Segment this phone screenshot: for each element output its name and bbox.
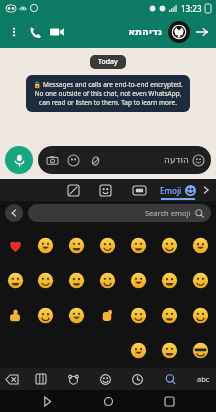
button[interactable]: Emoji 9 [61, 263, 92, 298]
staticText: Emoji [160, 185, 182, 196]
button[interactable]: Contact profile photo [168, 21, 190, 43]
button[interactable]: Emoji 4 [123, 227, 154, 263]
button[interactable]: Emoji 5 [154, 227, 185, 263]
button[interactable]: Search emoji [28, 204, 211, 222]
button[interactable]: Emoji 0 [0, 227, 30, 263]
button[interactable]: Video call [46, 21, 68, 43]
button[interactable]: Emoji [160, 179, 196, 201]
button[interactable]: Recent [125, 368, 149, 390]
button[interactable]: Emoji 10 [92, 263, 123, 298]
staticText: Search emoji [145, 208, 191, 218]
button[interactable]: Emoji 6 [185, 227, 216, 263]
button[interactable]: Emoji 11 [123, 263, 154, 298]
button[interactable]: Voice call [24, 21, 46, 43]
button[interactable]: GIF [128, 179, 150, 201]
button[interactable]: Emoji 17 [92, 298, 123, 333]
button[interactable]: Emoji 8 [30, 263, 61, 298]
button[interactable]: 🔒 Messages and calls are end-to-end encr… [26, 75, 190, 112]
button[interactable]: Attach [87, 153, 102, 168]
button[interactable]: Back [192, 22, 212, 42]
button[interactable]: Sticker [66, 153, 81, 168]
button[interactable]: Emoji 20 [185, 298, 216, 333]
staticText: abc [197, 374, 210, 384]
staticText: 🔒 Messages and calls are end-to-end encr… [33, 80, 183, 107]
button[interactable]: Emoji 7 [0, 263, 30, 298]
button[interactable]: More options [4, 22, 24, 42]
button[interactable]: Emoji 19 [154, 298, 185, 333]
button[interactable]: Home [94, 390, 122, 412]
button[interactable]: More [196, 180, 216, 200]
button[interactable]: Stickers [62, 179, 84, 201]
staticText: נדיהתא [128, 26, 163, 38]
button[interactable]: Back [33, 390, 61, 412]
button[interactable]: Emoji 12 [154, 263, 185, 298]
button[interactable]: Emoji 21 [123, 333, 154, 368]
button[interactable]: Recent apps [155, 390, 183, 412]
button[interactable]: Emoji 14 [0, 298, 30, 333]
button[interactable]: Emoji 15 [30, 298, 61, 333]
button[interactable]: Emoji 16 [61, 298, 92, 333]
button[interactable]: Backspace [0, 368, 24, 390]
staticText: 13:23 [181, 3, 202, 14]
button[interactable]: Emoji 1 [30, 227, 61, 263]
button[interactable]: Emoji 2 [61, 227, 92, 263]
button[interactable]: abc [190, 368, 216, 390]
button[interactable]: Animals and nature [61, 368, 85, 390]
button[interactable]: Smileys and people [93, 368, 117, 390]
button[interactable]: Search [157, 368, 183, 390]
button[interactable]: Camera [45, 153, 60, 168]
button[interactable]: Today [98, 57, 118, 67]
button[interactable]: Emoji 22 [154, 333, 185, 368]
button[interactable]: Back [5, 204, 23, 222]
staticText: Today [98, 57, 118, 67]
staticText: הודעה [164, 155, 189, 165]
button[interactable]: Camera [38, 146, 211, 174]
button[interactable]: Emoji 23 [185, 333, 216, 368]
button[interactable]: Recently used [29, 368, 53, 390]
button[interactable]: Emoji 18 [123, 298, 154, 333]
button[interactable]: Avatars [94, 179, 116, 201]
button[interactable]: Emoji 13 [185, 263, 216, 298]
button[interactable]: Record voice message [5, 146, 33, 174]
button[interactable]: Emoji 3 [92, 227, 123, 263]
